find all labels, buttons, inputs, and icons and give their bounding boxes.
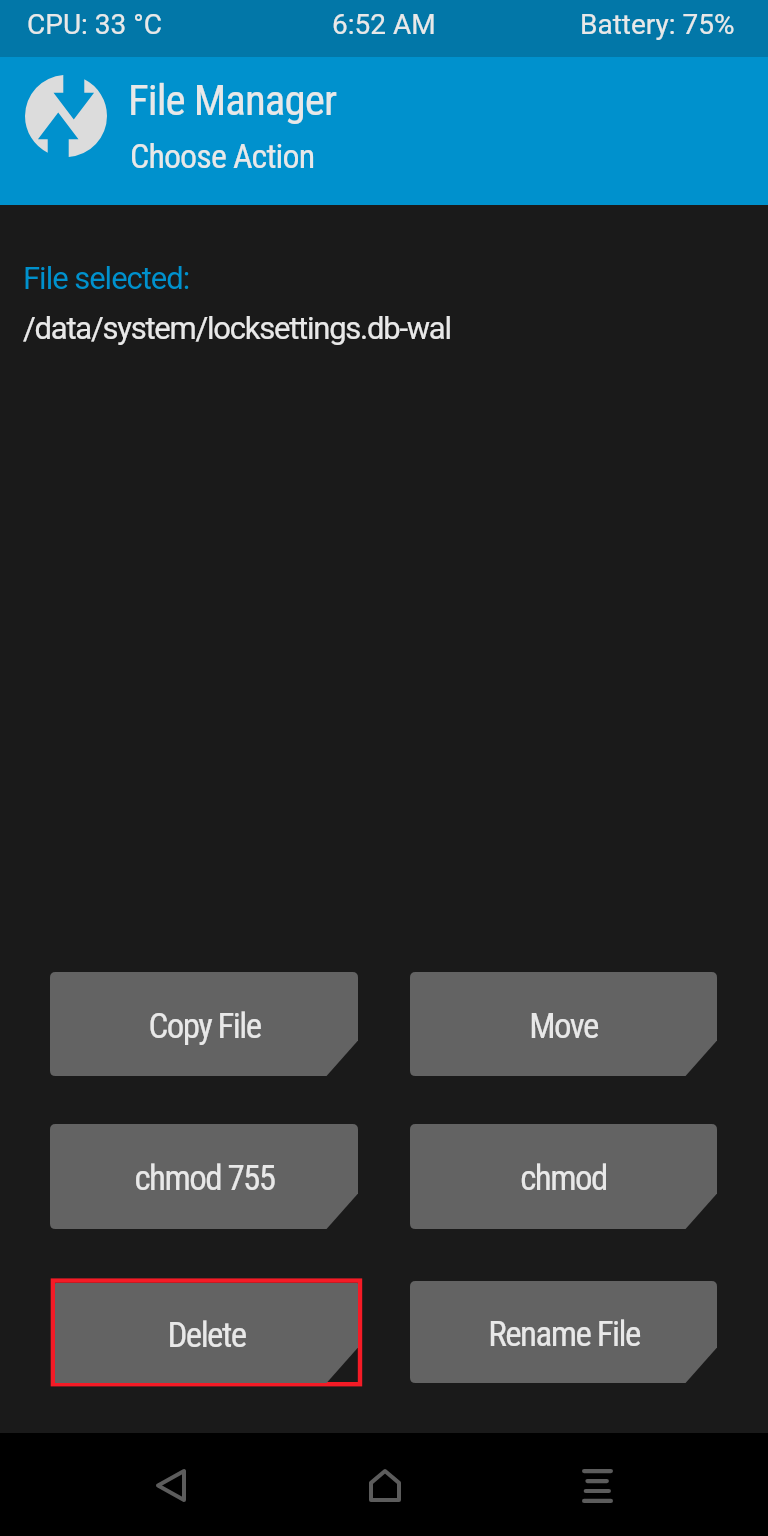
staticText: Battery: 75% — [580, 8, 735, 41]
staticText: Move — [529, 1006, 598, 1047]
button[interactable]: chmod 755 — [50, 1124, 358, 1229]
staticText: chmod — [520, 1158, 607, 1199]
button[interactable]: Move — [410, 972, 717, 1076]
staticText: /data/system/locksettings.db-wal — [23, 310, 451, 346]
button[interactable]: Rename File — [410, 1281, 717, 1383]
staticText: File Manager — [128, 75, 337, 125]
staticText: File selected: — [23, 260, 190, 296]
button[interactable]: chmod — [410, 1124, 717, 1229]
button[interactable]: Back — [119, 1434, 222, 1536]
staticText: 6:52 AM — [332, 8, 436, 41]
staticText: CPU: 33 °C — [27, 8, 162, 41]
staticText: chmod 755 — [134, 1158, 275, 1199]
staticText: Copy File — [148, 1006, 261, 1047]
staticText: Delete — [167, 1315, 246, 1356]
button[interactable]: Recent apps — [546, 1434, 649, 1536]
button[interactable]: Delete — [50, 1281, 358, 1383]
staticText: Choose Action — [130, 136, 315, 176]
button[interactable]: Home — [333, 1434, 436, 1536]
button[interactable]: Copy File — [50, 972, 358, 1076]
staticText: Rename File — [488, 1314, 640, 1355]
